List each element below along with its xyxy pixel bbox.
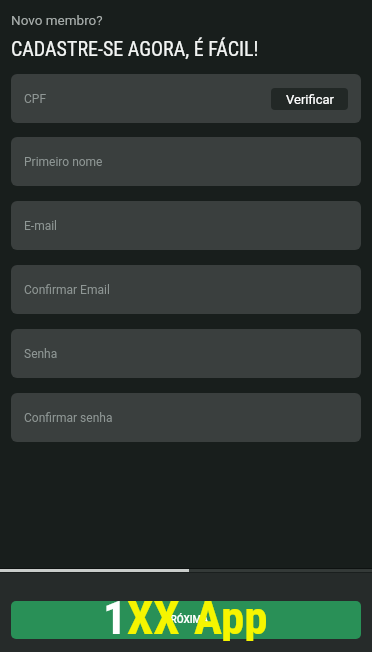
button[interactable]: Primeiro nome: [11, 137, 361, 186]
button[interactable]: Confirmar Email: [11, 265, 361, 314]
button[interactable]: CPF: [11, 74, 361, 123]
staticText: 1: [103, 590, 127, 641]
button[interactable]: Senha: [11, 329, 361, 378]
button[interactable]: Verificar: [271, 88, 348, 110]
staticText: Novo membro?: [11, 12, 103, 28]
staticText: E-mail: [24, 219, 58, 233]
button[interactable]: E-mail: [11, 201, 361, 250]
button[interactable]: PRÓXIMA: [11, 601, 361, 639]
staticText: Confirmar Email: [24, 283, 110, 297]
staticText: PRÓXIMA: [164, 614, 209, 626]
staticText: App: [194, 590, 268, 641]
staticText: CADASTRE-SE AGORA, É FÁCIL!: [11, 37, 259, 60]
button[interactable]: Confirmar senha: [11, 393, 361, 442]
staticText: CPF: [24, 92, 47, 106]
staticText: Senha: [24, 347, 58, 361]
staticText: Primeiro nome: [24, 155, 103, 169]
staticText: XX: [127, 590, 180, 641]
staticText: Confirmar senha: [24, 411, 113, 425]
staticText: Verificar: [286, 92, 334, 107]
